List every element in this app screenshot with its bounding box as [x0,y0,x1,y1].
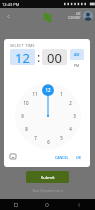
staticText: 12 [15,49,30,65]
staticText: 1 [60,91,63,97]
staticText: PM [74,63,80,68]
staticText: 7 [34,135,37,141]
staticText: 00 [47,49,62,65]
button[interactable]: Switch to text input [8,152,17,161]
staticText: 4 [69,126,72,132]
staticText: SELECT TIME [10,43,35,48]
staticText: AM [74,52,80,57]
button[interactable]: Profile [83,11,93,21]
button[interactable]: AM [70,49,84,60]
staticText: Submit [41,175,55,180]
staticText: Taxi Department [32,188,64,193]
staticText: 2 [69,100,72,106]
button[interactable]: Back [0,8,16,24]
staticText: 3 [73,113,76,119]
staticText: COMPANY [68,16,81,20]
button[interactable]: OK [74,152,83,163]
button[interactable]: PM [70,60,84,71]
staticText: 8 [25,126,28,132]
button[interactable]: 12 [10,49,35,65]
staticText: 11 [32,91,38,97]
staticText: OK [76,155,81,160]
button[interactable]: Back [63,199,95,210]
staticText: 12:43 PM [2,2,20,7]
staticText: 10 [23,100,29,106]
staticText: 9 [21,113,24,119]
staticText: 6 [47,139,50,145]
staticText: CANCEL [55,155,69,160]
button[interactable]: Submit [26,171,69,183]
staticText: 5 [60,135,63,141]
button[interactable]: CANCEL [53,152,71,163]
staticText: ABC [76,12,81,16]
staticText: : [37,49,41,65]
button[interactable]: Recent apps [0,199,31,210]
button[interactable]: Home [31,199,63,210]
button[interactable]: 00 [42,49,67,65]
staticText: 12 [45,87,51,93]
